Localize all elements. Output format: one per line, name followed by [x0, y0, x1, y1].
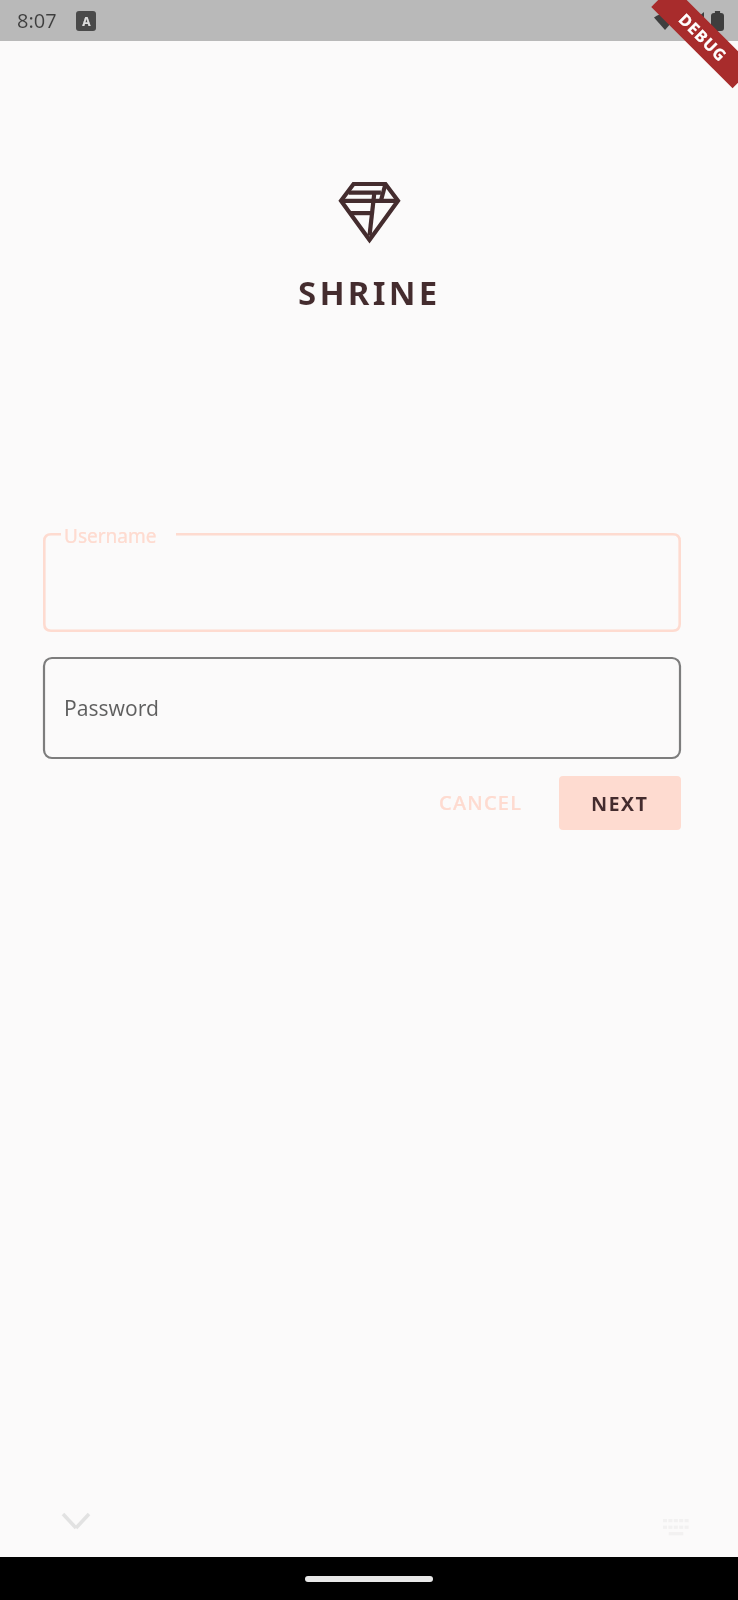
button[interactable]: CANCEL: [417, 775, 545, 830]
staticText: Password: [64, 694, 159, 723]
staticText: CANCEL: [439, 789, 523, 816]
button[interactable]: Password: [43, 657, 681, 759]
button[interactable]: Username: [43, 533, 681, 632]
staticText: NEXT: [591, 790, 649, 817]
staticText: 8:07: [17, 7, 57, 34]
staticText: SHRINE: [298, 270, 441, 315]
button[interactable]: NEXT: [559, 776, 681, 830]
staticText: Username: [64, 523, 157, 549]
button[interactable]: Hide keyboard: [52, 1497, 100, 1545]
staticText: DEBUG: [674, 8, 732, 66]
staticText: A: [82, 13, 91, 29]
